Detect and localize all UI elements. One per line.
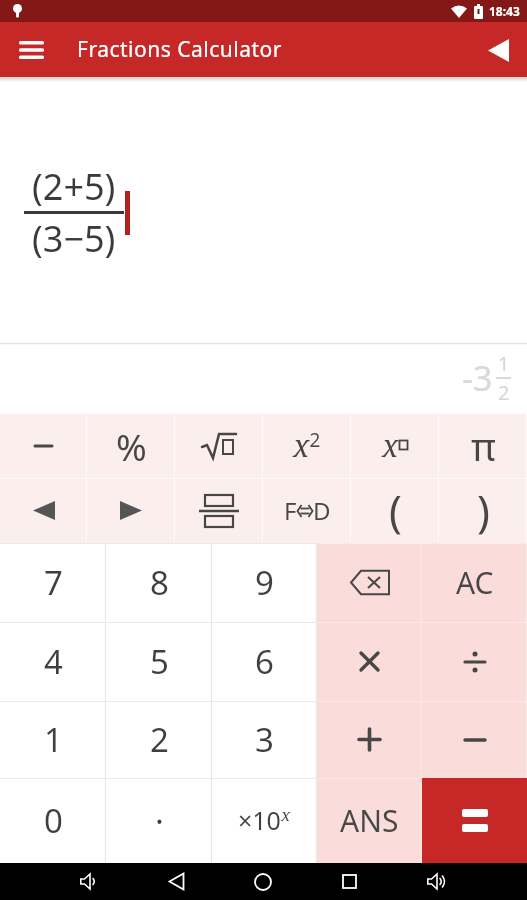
staticText: D xyxy=(313,494,331,527)
staticText: x xyxy=(382,425,399,466)
staticText: Fractions Calculator xyxy=(77,35,282,64)
staticText: % xyxy=(116,421,147,471)
button[interactable]: F xyxy=(263,478,351,543)
button[interactable] xyxy=(133,863,219,900)
button[interactable] xyxy=(87,478,175,543)
button[interactable]: 9 xyxy=(212,543,317,622)
button[interactable] xyxy=(0,478,87,543)
button[interactable]: AC xyxy=(422,543,527,622)
button[interactable]: 6 xyxy=(212,622,317,701)
staticText: (3−5) xyxy=(32,214,116,263)
staticText: 9 xyxy=(255,560,274,605)
button[interactable]: ) xyxy=(439,478,527,543)
button[interactable] xyxy=(175,413,263,478)
button[interactable] xyxy=(422,701,527,778)
staticText: F xyxy=(284,494,297,527)
staticText: 1 xyxy=(498,350,510,377)
staticText: ANS xyxy=(340,800,399,841)
staticText: 7 xyxy=(44,560,63,605)
button[interactable] xyxy=(317,701,422,778)
staticText: 4 xyxy=(44,639,63,684)
staticText: 18:43 xyxy=(489,3,520,19)
staticText: AC xyxy=(456,562,494,603)
button[interactable]: ( xyxy=(351,478,439,543)
staticText: · xyxy=(155,798,164,843)
button[interactable]: % xyxy=(87,413,175,478)
staticText: (2+5) xyxy=(32,162,116,211)
button[interactable]: π xyxy=(439,413,527,478)
button[interactable]: 1 xyxy=(0,701,106,778)
button[interactable]: 8 xyxy=(106,543,212,622)
button[interactable]: · xyxy=(106,778,212,863)
button[interactable] xyxy=(422,778,527,863)
button[interactable] xyxy=(175,478,263,543)
button[interactable] xyxy=(306,863,393,900)
staticText: ×10x xyxy=(238,803,291,838)
button[interactable]: x2 xyxy=(263,413,351,478)
button[interactable] xyxy=(47,863,133,900)
button[interactable]: 3 xyxy=(212,701,317,778)
button[interactable]: 0 xyxy=(0,778,106,863)
staticText: 0 xyxy=(44,798,63,843)
staticText: 3 xyxy=(255,717,274,762)
staticText: 2 xyxy=(498,379,510,406)
staticText: π xyxy=(471,420,496,472)
button[interactable]: 7 xyxy=(0,543,106,622)
button[interactable]: 2 xyxy=(106,701,212,778)
button[interactable] xyxy=(219,863,306,900)
button[interactable]: 4 xyxy=(0,622,106,701)
staticText: -3 xyxy=(462,355,493,401)
button[interactable]: ANS xyxy=(317,778,422,863)
button[interactable] xyxy=(393,863,480,900)
button[interactable] xyxy=(317,543,422,622)
staticText: ) xyxy=(477,481,490,540)
button[interactable]: 5 xyxy=(106,622,212,701)
button[interactable] xyxy=(317,622,422,701)
staticText: 8 xyxy=(150,560,169,605)
staticText: 6 xyxy=(255,639,274,684)
staticText: ( xyxy=(389,481,402,540)
button[interactable] xyxy=(422,622,527,701)
button[interactable] xyxy=(19,37,44,62)
button[interactable] xyxy=(0,413,87,478)
button[interactable]: ×10x xyxy=(212,778,317,863)
staticText: 2 xyxy=(150,717,169,762)
staticText: 1 xyxy=(44,717,63,762)
button[interactable]: x xyxy=(351,413,439,478)
button[interactable] xyxy=(483,35,513,65)
staticText: x2 xyxy=(293,425,321,466)
staticText: 5 xyxy=(150,639,169,684)
